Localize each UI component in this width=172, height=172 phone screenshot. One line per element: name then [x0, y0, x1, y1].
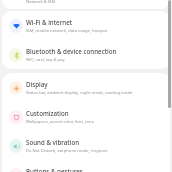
staticText: Buttons & gestures — [26, 167, 83, 172]
button[interactable]: Display — [2, 73, 170, 102]
button[interactable]: Sound & vibration — [2, 131, 170, 160]
staticText: Status bar, ambient display, night mode,… — [26, 90, 133, 96]
staticText: NFC, cast, tap & pay — [26, 57, 65, 63]
staticText: Sound & vibration — [26, 138, 80, 146]
button[interactable]: Customization — [2, 102, 170, 131]
staticText: Bluetooth & device connection — [26, 47, 117, 55]
staticText: Wallpapers, accent color, font, tone — [26, 119, 94, 125]
staticText: SIM, mobile network, data usage, hotspot — [26, 28, 108, 34]
button[interactable]: Bluetooth & device connection — [2, 40, 170, 69]
staticText: Wi-Fi & internet — [26, 18, 73, 26]
button[interactable]: Buttons & gestures — [2, 160, 170, 172]
staticText: Do Not Disturb, earphone mode, ringtone — [26, 148, 108, 154]
staticText: Display — [26, 80, 48, 88]
staticText: Customization — [26, 109, 69, 117]
button[interactable]: Wi-Fi & internet — [2, 11, 170, 40]
staticText: Network & SIM — [26, 0, 56, 5]
